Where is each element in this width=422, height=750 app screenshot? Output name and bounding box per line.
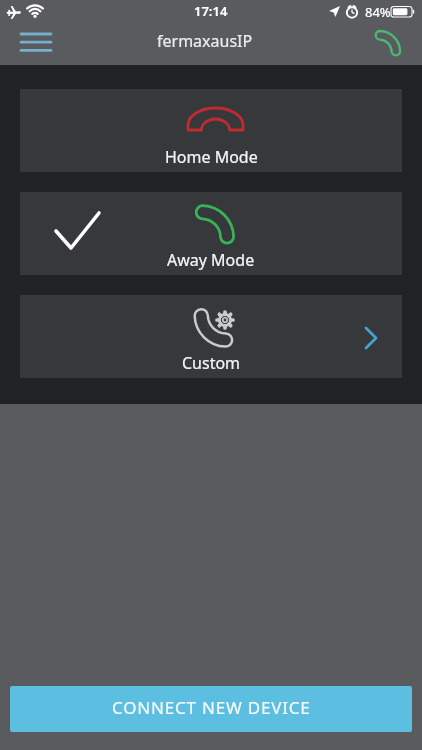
button[interactable]: Home Mode [20, 89, 402, 172]
button[interactable]: CONNECT NEW DEVICE [10, 686, 412, 732]
button[interactable] [370, 27, 412, 63]
staticText: Away Mode [167, 249, 255, 271]
button[interactable]: Away Mode [20, 192, 402, 275]
staticText: Home Mode [165, 146, 258, 168]
staticText: 84% [365, 3, 391, 21]
staticText: fermaxausIP [157, 30, 253, 52]
staticText: Custom [182, 352, 241, 374]
button[interactable]: Custom [20, 295, 402, 378]
staticText: 17:14 [194, 2, 228, 20]
staticText: CONNECT NEW DEVICE [112, 696, 311, 719]
button[interactable] [12, 25, 60, 59]
